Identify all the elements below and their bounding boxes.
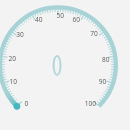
button[interactable]: Speed gauge [0,0,130,130]
